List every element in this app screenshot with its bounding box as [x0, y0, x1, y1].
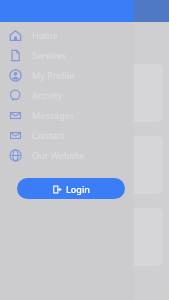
staticText: Services [32, 49, 67, 61]
staticText: Messages [32, 109, 74, 121]
staticText: My Profile [32, 69, 75, 81]
button[interactable]: Activity [0, 85, 134, 105]
button[interactable]: My Profile [0, 65, 134, 85]
button[interactable]: Home [0, 25, 134, 45]
staticText: Contact [32, 129, 65, 141]
other: Messages [9, 109, 22, 122]
other: Activity [9, 89, 22, 102]
other: My Profile [9, 69, 22, 82]
other: Contact [9, 129, 22, 142]
staticText: Home [32, 29, 58, 41]
staticText: Login [66, 183, 90, 195]
button[interactable]: Login [17, 178, 125, 199]
other: Our Website [9, 149, 22, 162]
button[interactable]: Our Website [0, 145, 134, 165]
staticText: Activity [32, 89, 63, 101]
button[interactable]: Services [0, 45, 134, 65]
other: Services [9, 49, 22, 62]
staticText: Our Website [32, 149, 85, 161]
button[interactable]: r [56, 136, 163, 194]
button[interactable]: Contact [0, 125, 134, 145]
button[interactable]: t [56, 208, 163, 266]
button[interactable]: s [56, 64, 163, 122]
other: Home [9, 29, 22, 42]
button[interactable]: Messages [0, 105, 134, 125]
